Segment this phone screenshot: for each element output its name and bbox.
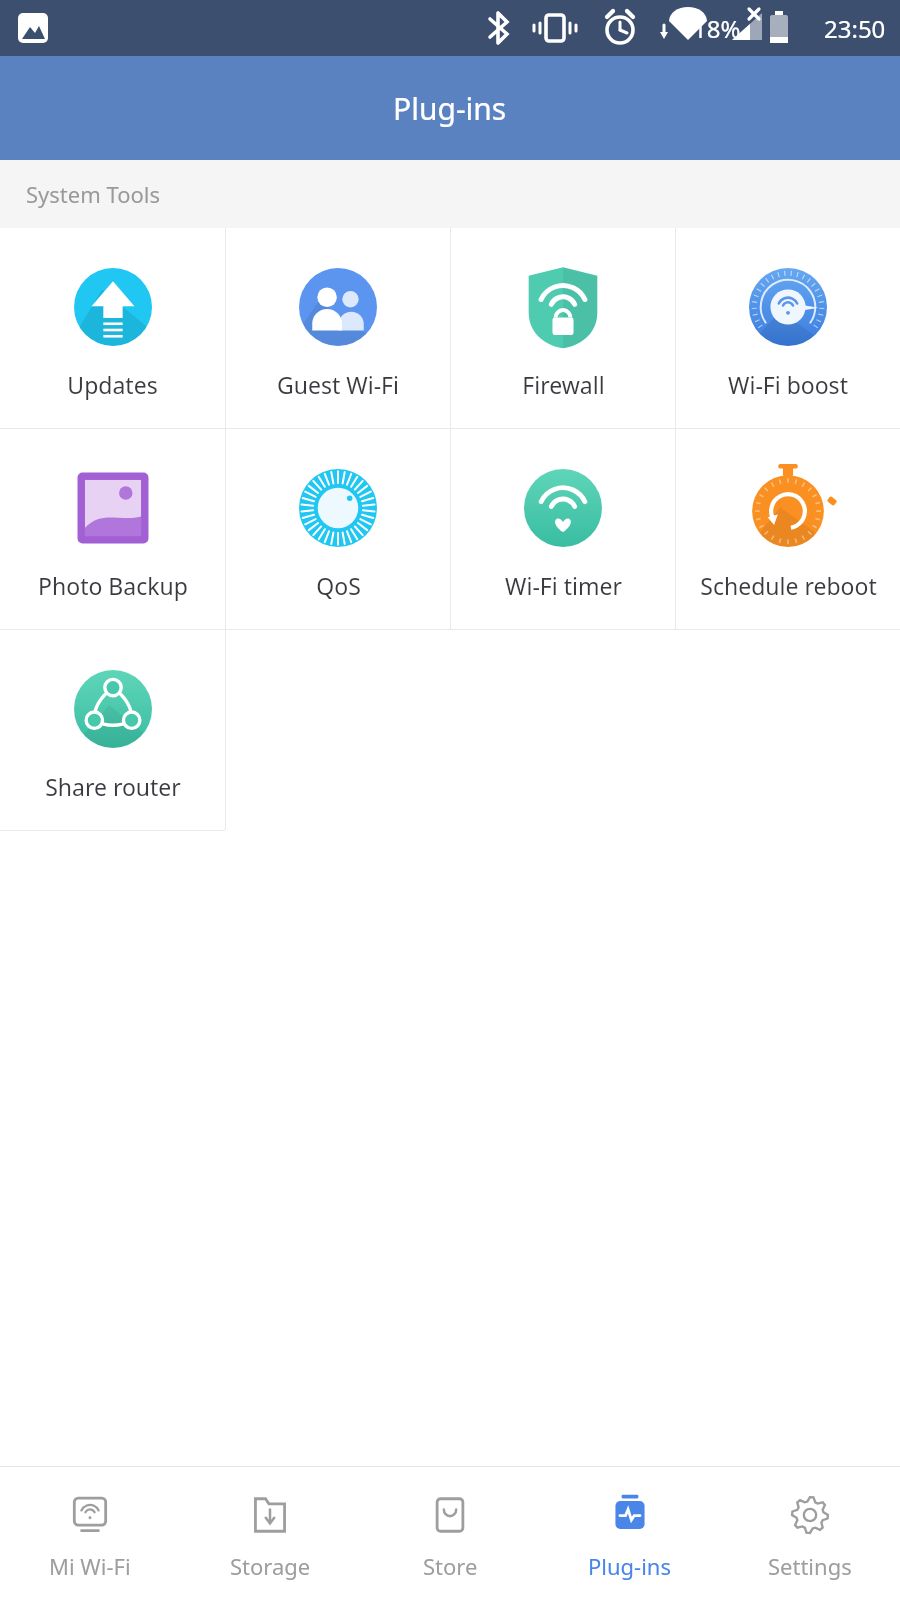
- staticText: Schedule reboot: [700, 570, 877, 601]
- button[interactable]: Guest Wi-Fi: [226, 228, 450, 428]
- staticText: Updates: [67, 369, 158, 400]
- staticText: Firewall: [522, 369, 605, 400]
- staticText: Mi Wi-Fi: [49, 1551, 131, 1581]
- staticText: Photo Backup: [38, 570, 188, 601]
- staticText: 23:50: [824, 12, 886, 45]
- staticText: Wi-Fi boost: [728, 369, 848, 400]
- staticText: Wi-Fi timer: [505, 570, 622, 601]
- button[interactable]: Share router: [0, 630, 225, 830]
- staticText: QoS: [316, 570, 361, 601]
- button[interactable]: Updates: [0, 228, 225, 428]
- button[interactable]: Wi-Fi boost: [676, 228, 900, 428]
- button[interactable]: Wi-Fi timer: [451, 429, 675, 629]
- button[interactable]: Settings: [720, 1467, 900, 1600]
- button[interactable]: Mi Wi-Fi: [0, 1467, 180, 1600]
- button[interactable]: Firewall: [451, 228, 675, 428]
- staticText: Store: [423, 1551, 478, 1581]
- button[interactable]: Photo Backup: [0, 429, 225, 629]
- staticText: Plug-ins: [588, 1551, 672, 1581]
- button[interactable]: Storage: [180, 1467, 360, 1600]
- button[interactable]: Schedule reboot: [676, 429, 900, 629]
- staticText: 18%: [693, 12, 741, 45]
- staticText: Settings: [768, 1551, 852, 1581]
- button[interactable]: QoS: [226, 429, 450, 629]
- staticText: Guest Wi-Fi: [277, 369, 399, 400]
- staticText: System Tools: [26, 179, 161, 209]
- button[interactable]: Plug-ins: [540, 1467, 720, 1600]
- staticText: Share router: [45, 771, 181, 802]
- button[interactable]: Store: [360, 1467, 540, 1600]
- staticText: Plug-ins: [393, 88, 507, 129]
- staticText: Storage: [230, 1551, 311, 1581]
